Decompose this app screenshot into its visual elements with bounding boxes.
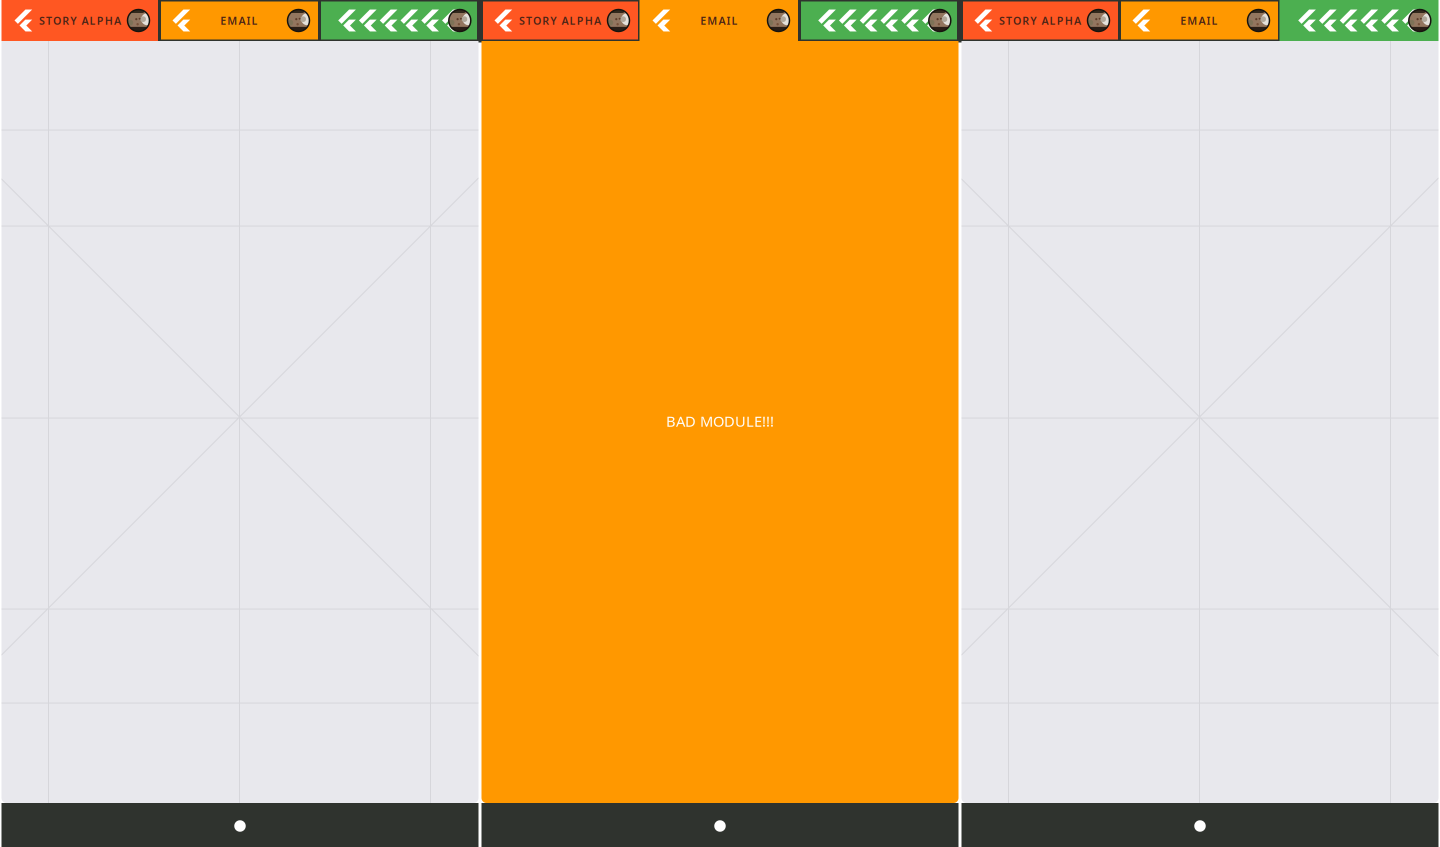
button[interactable]: Flutter bar (319, 0, 478, 41)
staticText: EMAIL (220, 13, 258, 28)
staticText: EMAIL (700, 13, 738, 28)
button[interactable]: EMAIL (1119, 0, 1279, 41)
staticText: BAD MODULE!!! (666, 411, 774, 431)
button[interactable]: STORY ALPHA (961, 0, 1119, 41)
button[interactable]: EMAIL (639, 0, 799, 41)
button[interactable]: Flutter bar (1279, 0, 1438, 41)
button[interactable]: STORY ALPHA (1, 0, 159, 41)
staticText: STORY ALPHA (39, 13, 121, 28)
button[interactable]: STORY ALPHA (481, 0, 639, 41)
staticText: STORY ALPHA (519, 13, 601, 28)
button[interactable]: EMAIL (159, 0, 319, 41)
button[interactable]: Flutter bar (799, 0, 958, 41)
staticText: EMAIL (1180, 13, 1218, 28)
staticText: STORY ALPHA (999, 13, 1081, 28)
